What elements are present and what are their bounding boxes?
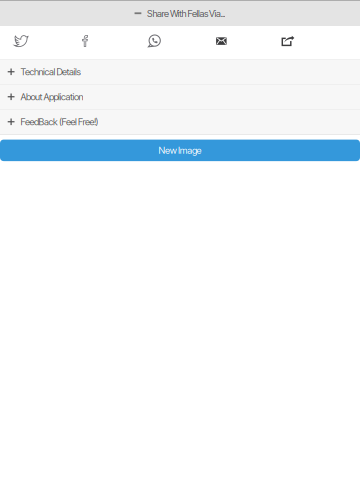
staticText: Technical Details xyxy=(20,66,80,77)
button[interactable]: Share on Facebook xyxy=(67,24,109,57)
button[interactable]: About Application xyxy=(0,85,360,110)
staticText: FeedBack (Feel Free!) xyxy=(20,116,98,127)
staticText: New Image xyxy=(158,145,202,156)
button[interactable]: Technical Details xyxy=(0,60,360,85)
button[interactable]: Share on Twitter xyxy=(0,24,42,57)
staticText: About Application xyxy=(20,91,83,102)
button[interactable]: Share on WhatsApp xyxy=(133,24,176,57)
button[interactable]: More sharing options xyxy=(267,24,309,57)
button[interactable]: New Image xyxy=(0,140,360,161)
button[interactable]: FeedBack (Feel Free!) xyxy=(0,110,360,135)
button[interactable]: Share by Mail xyxy=(200,24,243,57)
staticText: Share With Fellas Via... xyxy=(147,8,225,19)
